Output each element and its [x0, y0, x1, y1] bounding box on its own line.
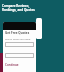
staticText: Continue [5, 63, 19, 67]
staticText: Tell us what you need [5, 37, 31, 40]
button[interactable] [5, 53, 34, 58]
staticText: Compare Reviews, Rankings, and Quotes [2, 4, 35, 12]
button[interactable] [5, 42, 34, 47]
staticText: Get Free Quotes [5, 31, 30, 35]
